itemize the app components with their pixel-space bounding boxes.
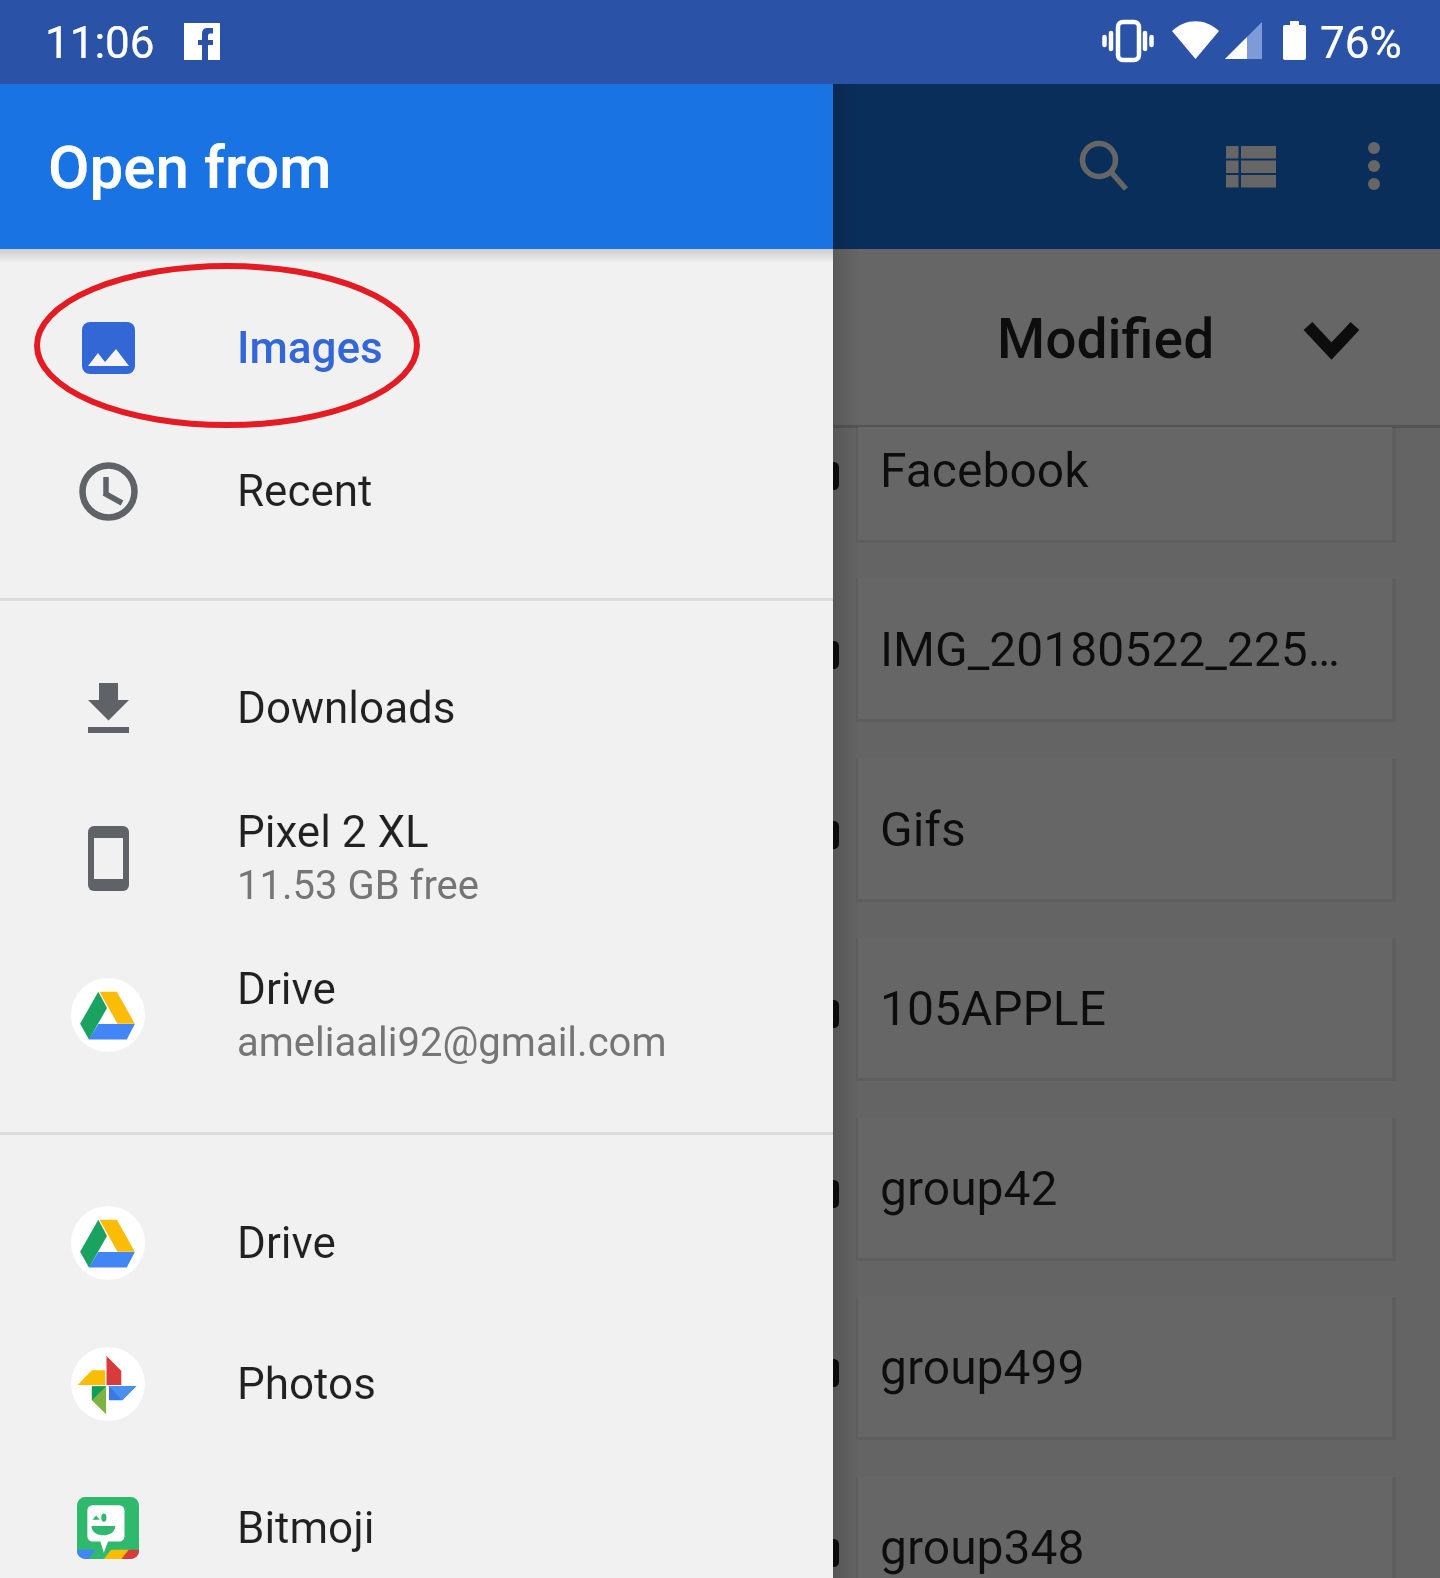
staticText: group499	[880, 1339, 1085, 1395]
button[interactable]: Downloads	[0, 636, 833, 779]
button[interactable]: IMG_20180522_225…	[0, 577, 1440, 720]
button[interactable]: Open from	[0, 84, 833, 249]
button[interactable]: Pixel 2 XL	[0, 786, 833, 929]
staticText: Open from	[48, 132, 332, 202]
button[interactable]: Recent	[0, 419, 833, 562]
staticText: Gifs	[880, 801, 966, 857]
staticText: ameliaali92@gmail.com	[237, 1019, 667, 1066]
button[interactable]: Bitmoji	[0, 1456, 833, 1578]
staticText: 105APPLE	[880, 980, 1106, 1036]
button[interactable]: group348	[0, 1475, 1440, 1578]
staticText: Drive	[237, 963, 336, 1015]
staticText: IMG_20180522_225…	[880, 621, 1340, 677]
button[interactable]: Drive	[0, 943, 833, 1086]
staticText: Facebook	[880, 442, 1089, 498]
staticText: group348	[880, 1519, 1085, 1575]
button[interactable]: Modified	[920, 252, 1440, 425]
button[interactable]: Search	[1049, 111, 1161, 223]
staticText: Photos	[237, 1358, 376, 1410]
staticText: Images	[237, 322, 383, 374]
button[interactable]: Photos	[0, 1312, 833, 1455]
button[interactable]: Gifs	[0, 757, 1440, 900]
staticText: 11.53 GB free	[237, 862, 479, 909]
staticText: 11:06	[45, 17, 155, 69]
button[interactable]: More options	[1318, 110, 1430, 222]
staticText: Modified	[997, 307, 1215, 371]
staticText: Pixel 2 XL	[237, 806, 429, 858]
button[interactable]: group42	[0, 1116, 1440, 1259]
staticText: group42	[880, 1160, 1058, 1216]
button[interactable]: 105APPLE	[0, 936, 1440, 1079]
staticText: Downloads	[237, 682, 456, 734]
staticText: Bitmoji	[237, 1502, 375, 1554]
staticText: Drive	[237, 1217, 336, 1269]
button[interactable]: Drive	[0, 1171, 833, 1314]
button[interactable]: List view	[1195, 110, 1307, 222]
button[interactable]: Facebook	[0, 427, 1440, 541]
button[interactable]: Images	[0, 276, 833, 419]
button[interactable]: group499	[0, 1295, 1440, 1438]
staticText: 76%	[1320, 17, 1402, 69]
staticText: Recent	[237, 465, 373, 517]
